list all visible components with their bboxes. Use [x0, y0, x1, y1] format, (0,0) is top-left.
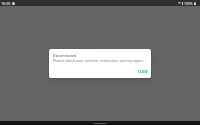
button[interactable]: Dismiss dialog [0, 0, 200, 125]
staticText: 100% [184, 1, 193, 6]
other: Notification [12, 2, 15, 5]
staticText: CLOSE [138, 70, 148, 74]
button[interactable]: CLOSE [137, 69, 149, 75]
other: Battery full [194, 2, 196, 5]
button[interactable]: Home [94, 123, 106, 124]
other: Wi-Fi [178, 2, 181, 4]
button: Disconnected [49, 49, 151, 78]
staticText: Please check your internet connection an… [53, 58, 144, 63]
staticText: 10:30 [1, 1, 11, 6]
staticText: Disconnected [53, 53, 77, 58]
